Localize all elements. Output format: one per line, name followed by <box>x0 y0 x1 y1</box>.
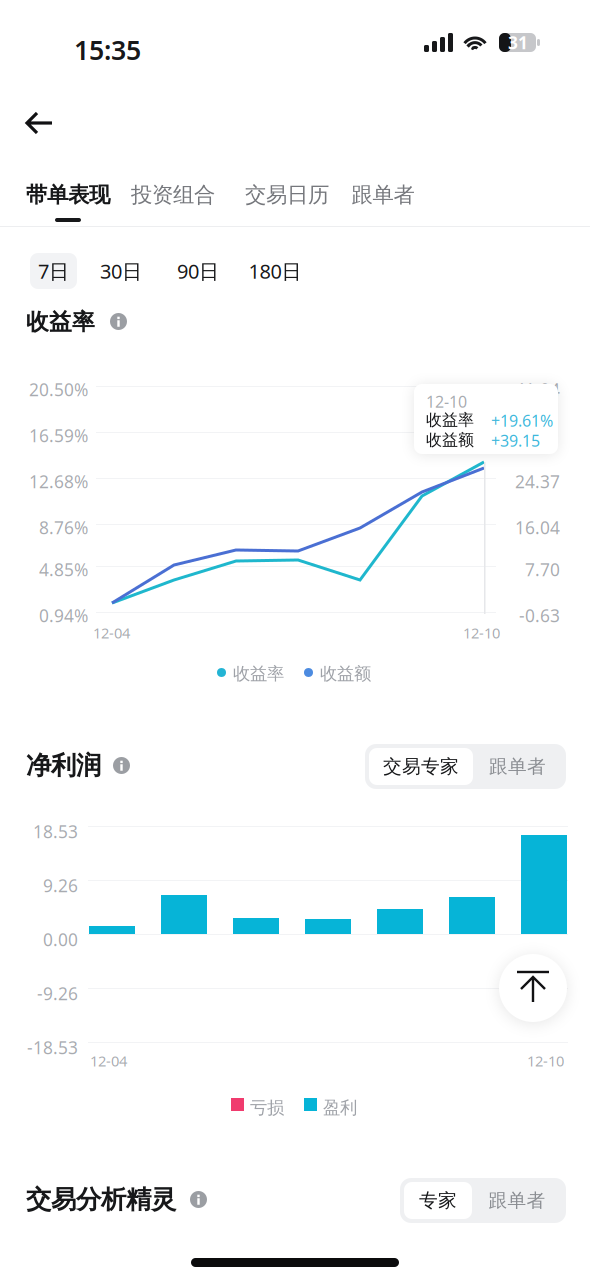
staticText: +19.61% <box>491 410 553 431</box>
staticText: 带单表现 <box>26 182 110 208</box>
staticText: 180日 <box>248 258 301 284</box>
staticText: 9.26 <box>43 874 78 897</box>
staticText: 7日 <box>38 258 69 284</box>
staticText: 盈利 <box>323 1097 357 1118</box>
button[interactable]: 180日 <box>242 253 308 289</box>
staticText: -18.53 <box>27 1036 78 1059</box>
staticText: 31 <box>508 31 528 54</box>
staticText: 30日 <box>100 258 142 284</box>
button[interactable]: 交易专家 <box>369 748 473 785</box>
staticText: 12-10 <box>527 1051 564 1070</box>
staticText: 收益额 <box>426 430 474 450</box>
button[interactable]: 90日 <box>170 253 226 289</box>
staticText: 交易日历 <box>245 182 329 208</box>
staticText: 7.70 <box>525 558 560 581</box>
staticText: 专家 <box>419 1189 457 1212</box>
staticText: 收益额 <box>320 663 371 684</box>
staticText: 16.59% <box>29 424 88 447</box>
button[interactable]: 交易日历 <box>243 180 331 210</box>
button[interactable]: Back <box>12 97 68 149</box>
staticText: 交易专家 <box>383 755 459 778</box>
staticText: 收益率 <box>26 308 95 336</box>
staticText: 12-04 <box>90 1051 127 1070</box>
staticText: -9.26 <box>37 982 78 1005</box>
staticText: 12-04 <box>93 623 130 642</box>
staticText: -0.63 <box>519 604 560 627</box>
staticText: 12.68% <box>29 470 88 493</box>
staticText: 15:35 <box>74 32 141 67</box>
staticText: 20.50% <box>29 378 88 401</box>
staticText: 投资组合 <box>131 182 215 208</box>
staticText: 交易分析精灵 <box>26 1184 176 1215</box>
button[interactable]: 跟单者 <box>472 1182 562 1219</box>
staticText: 跟单者 <box>488 1189 545 1212</box>
staticText: 收益率 <box>426 410 474 430</box>
staticText: 12-10 <box>426 391 467 412</box>
staticText: 跟单者 <box>351 182 414 208</box>
button[interactable]: 30日 <box>93 253 149 289</box>
staticText: 4.85% <box>39 558 88 581</box>
button[interactable]: 带单表现 <box>24 180 112 210</box>
staticText: 18.53 <box>33 820 78 843</box>
staticText: 90日 <box>177 258 219 284</box>
button[interactable]: 7日 <box>30 253 77 289</box>
staticText: 净利润 <box>26 750 101 781</box>
staticText: 跟单者 <box>489 755 546 778</box>
staticText: 8.76% <box>39 516 88 539</box>
staticText: 0.94% <box>39 604 88 627</box>
button[interactable]: 专家 <box>404 1182 472 1219</box>
staticText: 41.04 <box>515 378 560 401</box>
button[interactable]: 跟单者 <box>473 748 562 785</box>
staticText: 24.37 <box>515 470 560 493</box>
button[interactable]: Scroll to top <box>499 954 567 1022</box>
staticText: 12-10 <box>463 623 500 642</box>
staticText: 亏损 <box>250 1097 284 1118</box>
staticText: +39.15 <box>491 430 540 451</box>
button[interactable]: 投资组合 <box>129 180 217 210</box>
staticText: 0.00 <box>43 928 78 951</box>
button[interactable]: 跟单者 <box>349 180 417 210</box>
staticText: 收益率 <box>233 663 284 684</box>
staticText: 16.04 <box>515 516 560 539</box>
